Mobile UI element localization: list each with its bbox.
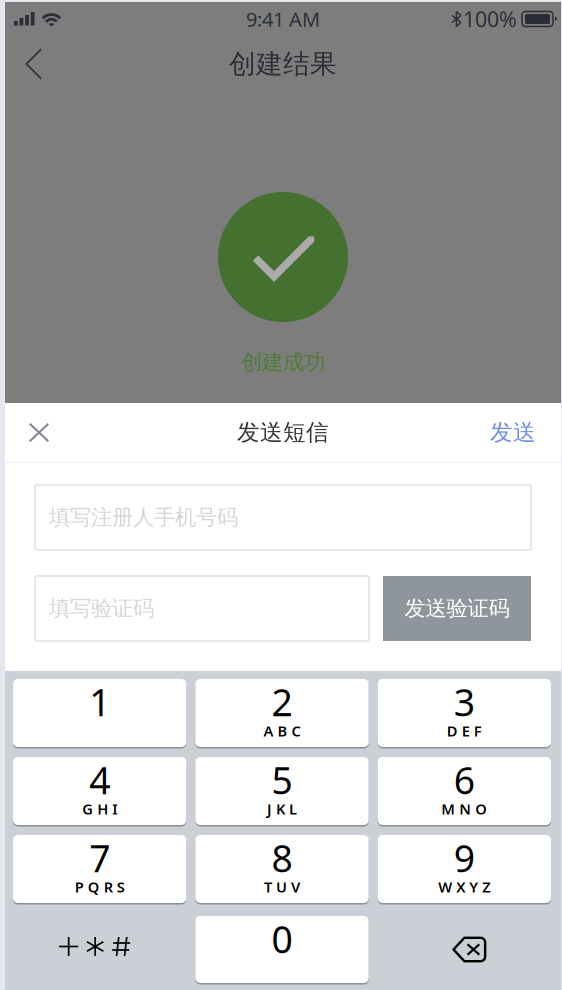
staticText: 2: [271, 677, 292, 727]
staticText: 6: [454, 755, 475, 805]
button[interactable]: Delete: [378, 916, 551, 983]
staticText: 0: [271, 914, 292, 964]
button[interactable]: 发送验证码: [383, 576, 531, 641]
staticText: W X Y Z: [438, 877, 490, 896]
staticText: J K L: [267, 799, 297, 818]
staticText: 7: [89, 833, 110, 883]
staticText: 100%: [463, 5, 517, 33]
button[interactable]: 0: [195, 916, 369, 983]
staticText: 填写验证码: [49, 595, 154, 622]
staticText: M N O: [441, 799, 487, 818]
button[interactable]: 8: [195, 835, 369, 903]
button[interactable]: Close: [5, 404, 73, 461]
staticText: P Q R S: [75, 877, 125, 896]
staticText: A B C: [263, 721, 300, 740]
staticText: 9: [454, 833, 475, 883]
staticText: 9:41 AM: [246, 6, 320, 32]
button[interactable]: 2: [195, 679, 369, 747]
button[interactable]: 4: [13, 757, 186, 825]
button[interactable]: Symbols: [13, 916, 186, 983]
staticText: 发送短信: [237, 419, 329, 446]
staticText: G H I: [82, 799, 117, 818]
button[interactable]: Back: [5, 35, 62, 92]
button[interactable]: 1: [13, 679, 186, 747]
button[interactable]: 9: [378, 835, 551, 903]
staticText: T U V: [264, 877, 300, 896]
staticText: 4: [89, 755, 110, 805]
button[interactable]: 3: [378, 679, 551, 747]
staticText: 5: [271, 755, 292, 805]
button[interactable]: 7: [13, 835, 186, 903]
staticText: 填写注册人手机号码: [49, 504, 238, 531]
button[interactable]: 5: [195, 757, 369, 825]
button[interactable]: 6: [378, 757, 551, 825]
staticText: 发送: [490, 419, 536, 446]
staticText: 创建成功: [241, 349, 325, 375]
button[interactable]: 发送: [466, 401, 561, 464]
staticText: 3: [454, 677, 475, 727]
staticText: 创建结果: [229, 48, 337, 80]
staticText: D E F: [447, 721, 482, 740]
staticText: 1: [89, 677, 110, 727]
staticText: 8: [271, 833, 292, 883]
staticText: 发送验证码: [404, 595, 509, 622]
